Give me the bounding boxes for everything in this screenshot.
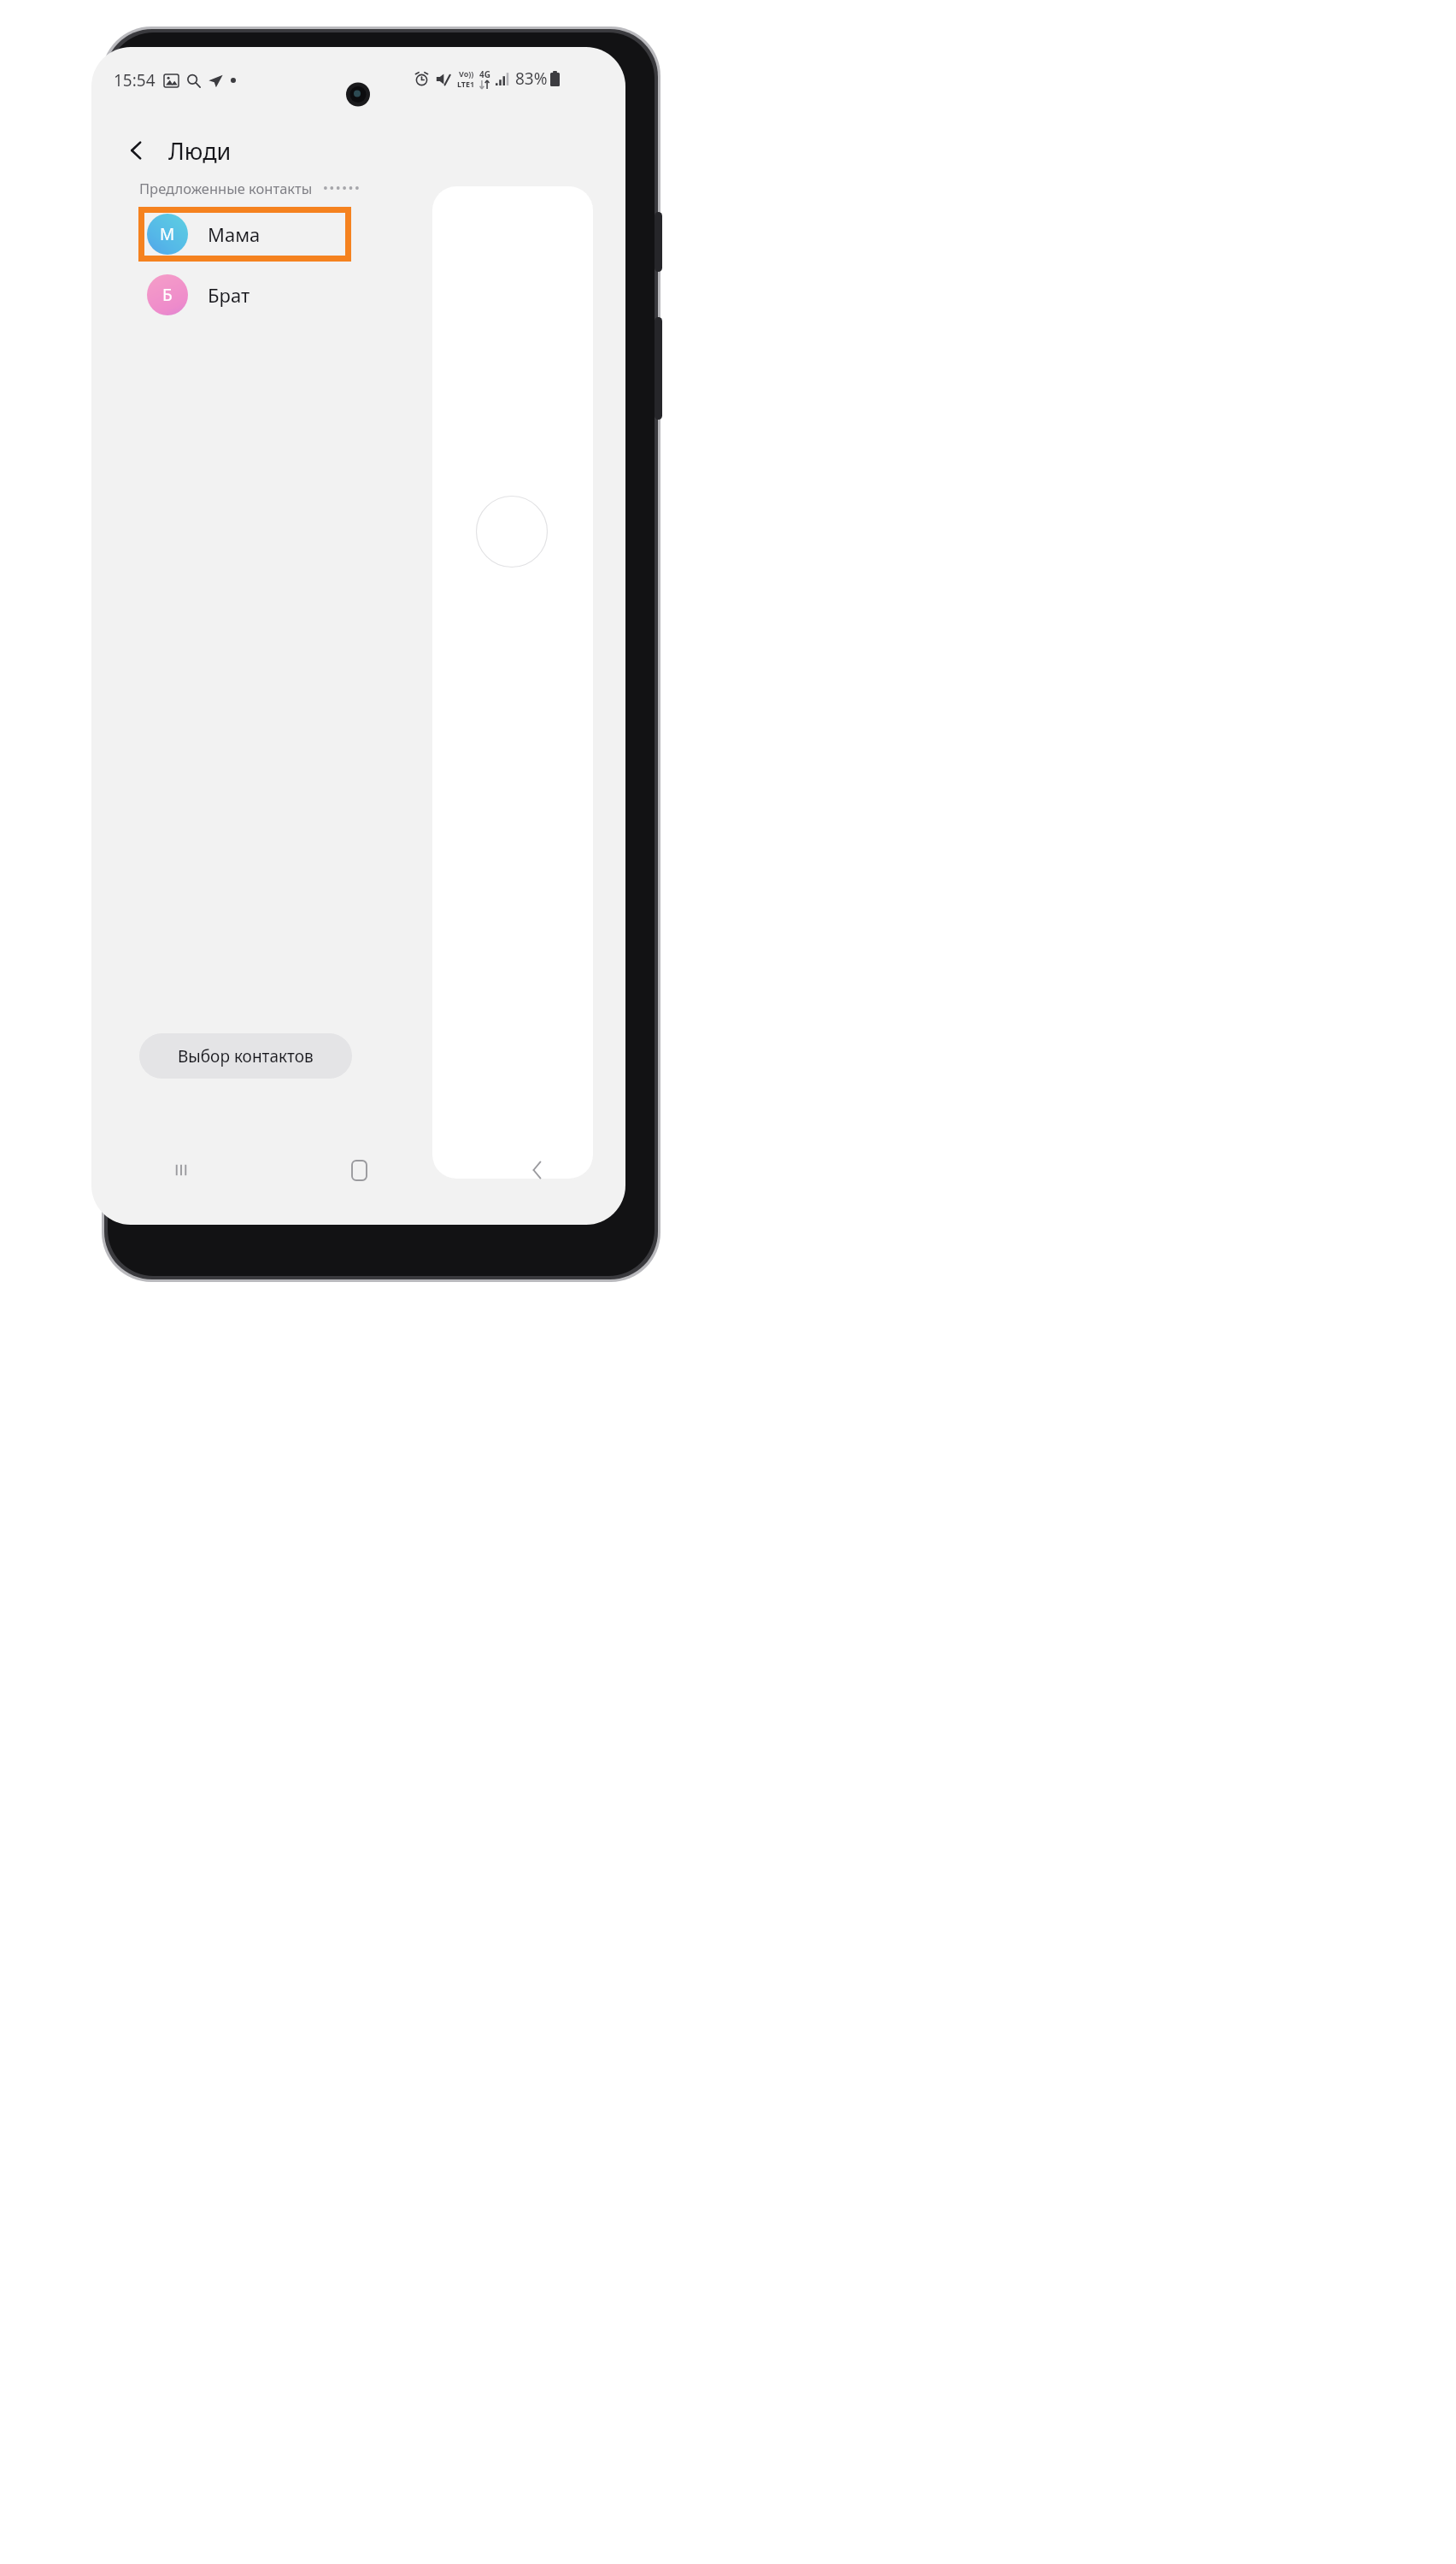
staticText: 4G: [479, 68, 490, 80]
staticText: Vo)): [459, 68, 474, 79]
button[interactable]: М: [138, 207, 351, 262]
staticText: LTE1: [457, 79, 475, 89]
button[interactable]: Б: [147, 268, 352, 322]
staticText: Брат: [208, 282, 250, 308]
staticText: 15:54: [114, 69, 156, 91]
button[interactable]: Выбор контактов: [139, 1033, 352, 1079]
staticText: Б: [162, 284, 173, 306]
button[interactable]: Назад: [448, 1146, 625, 1194]
button[interactable]: Назад: [115, 129, 158, 172]
staticText: Люди: [168, 135, 232, 167]
staticText: Предложенные контакты: [139, 179, 313, 197]
staticText: Мама: [208, 221, 261, 247]
button[interactable]: Главный экран: [270, 1146, 448, 1194]
staticText: М: [160, 223, 175, 245]
button[interactable]: Последние приложения: [91, 1146, 270, 1194]
staticText: 83%: [515, 68, 548, 90]
staticText: Выбор контактов: [178, 1045, 314, 1067]
